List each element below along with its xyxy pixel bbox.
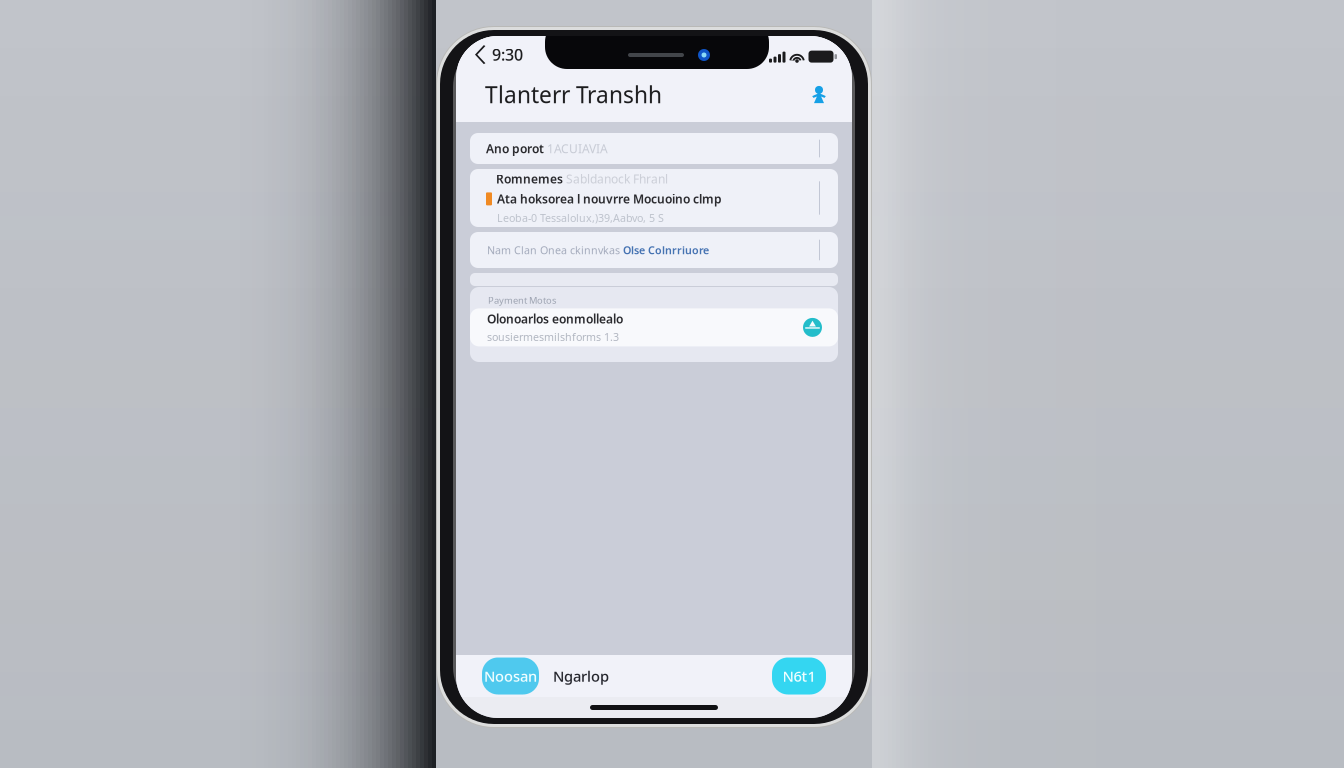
button[interactable]: Romnemes xyxy=(470,169,838,227)
staticText: sousiermesmilshforms 1.3 xyxy=(487,330,619,344)
staticText: Olonoarlos eonmollealo xyxy=(487,311,623,327)
button[interactable]: Profile xyxy=(805,79,833,109)
staticText: N6t1 xyxy=(782,666,815,686)
staticText: 1ACUIAVIA xyxy=(547,140,608,156)
staticText: Leoba-0 Tessalolux,)39,Aabvo, 5 S xyxy=(497,211,664,225)
staticText: Payment Motos xyxy=(488,294,556,306)
button[interactable]: Ano porot xyxy=(470,133,838,164)
staticText: Sabldanock Fhranl xyxy=(566,171,668,187)
staticText: Olse Colnrriuore xyxy=(623,243,709,257)
staticText: Tlanterr Transhh xyxy=(485,79,662,109)
button[interactable]: N6t1 xyxy=(772,657,826,694)
staticText: Ata hoksorea l nouvrre Mocuoino clmp xyxy=(497,191,722,207)
button[interactable]: Nam Clan Onea ckinnvkas xyxy=(470,232,838,268)
staticText: Romnemes xyxy=(496,171,566,187)
staticText: 9:30 xyxy=(492,44,523,65)
button[interactable]: Ngarlop xyxy=(539,657,623,694)
staticText: Noosan xyxy=(484,666,537,686)
button[interactable]: Olonoarlos eonmollealo xyxy=(470,308,838,346)
staticText: Ngarlop xyxy=(553,666,609,686)
staticText: Ano porot xyxy=(486,140,547,156)
button[interactable]: Back xyxy=(456,34,523,65)
staticText: Nam Clan Onea ckinnvkas xyxy=(487,243,623,257)
button[interactable]: Noosan xyxy=(482,657,539,694)
